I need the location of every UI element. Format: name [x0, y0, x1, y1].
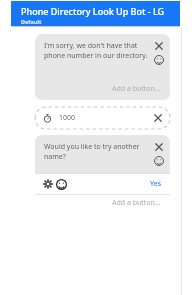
staticText: I'm sorry, we don't have that	[44, 41, 138, 51]
staticText: Default	[21, 18, 42, 25]
button[interactable]: Phone Directory Look Up Bot - LG	[11, 1, 180, 26]
button[interactable]: Yes	[150, 179, 162, 189]
staticText: Yes	[150, 179, 162, 189]
staticText: Phone Directory Look Up Bot - LG	[21, 5, 165, 17]
staticText: Add a button...	[112, 84, 161, 94]
button[interactable]: Delete	[154, 41, 164, 51]
button[interactable]: I'm sorry, we don't have that	[35, 34, 170, 100]
button[interactable]: Emoji	[154, 55, 164, 65]
staticText: name?	[44, 152, 66, 162]
button[interactable]: Emoji	[56, 179, 67, 190]
button[interactable]: Add a button...	[35, 195, 170, 211]
button[interactable]: Would you like to try another	[35, 135, 170, 211]
button[interactable]: Remove delay	[153, 113, 163, 123]
staticText: Add a button...	[112, 198, 161, 208]
button[interactable]: Settings	[43, 179, 53, 189]
staticText: phone number in our directory.	[44, 51, 148, 61]
staticText: Would you like to try another	[44, 142, 140, 152]
button[interactable]: 1000	[35, 107, 170, 129]
button[interactable]: Emoji	[154, 156, 164, 166]
staticText: 1000	[59, 113, 76, 123]
button[interactable]: Delete	[154, 142, 164, 152]
